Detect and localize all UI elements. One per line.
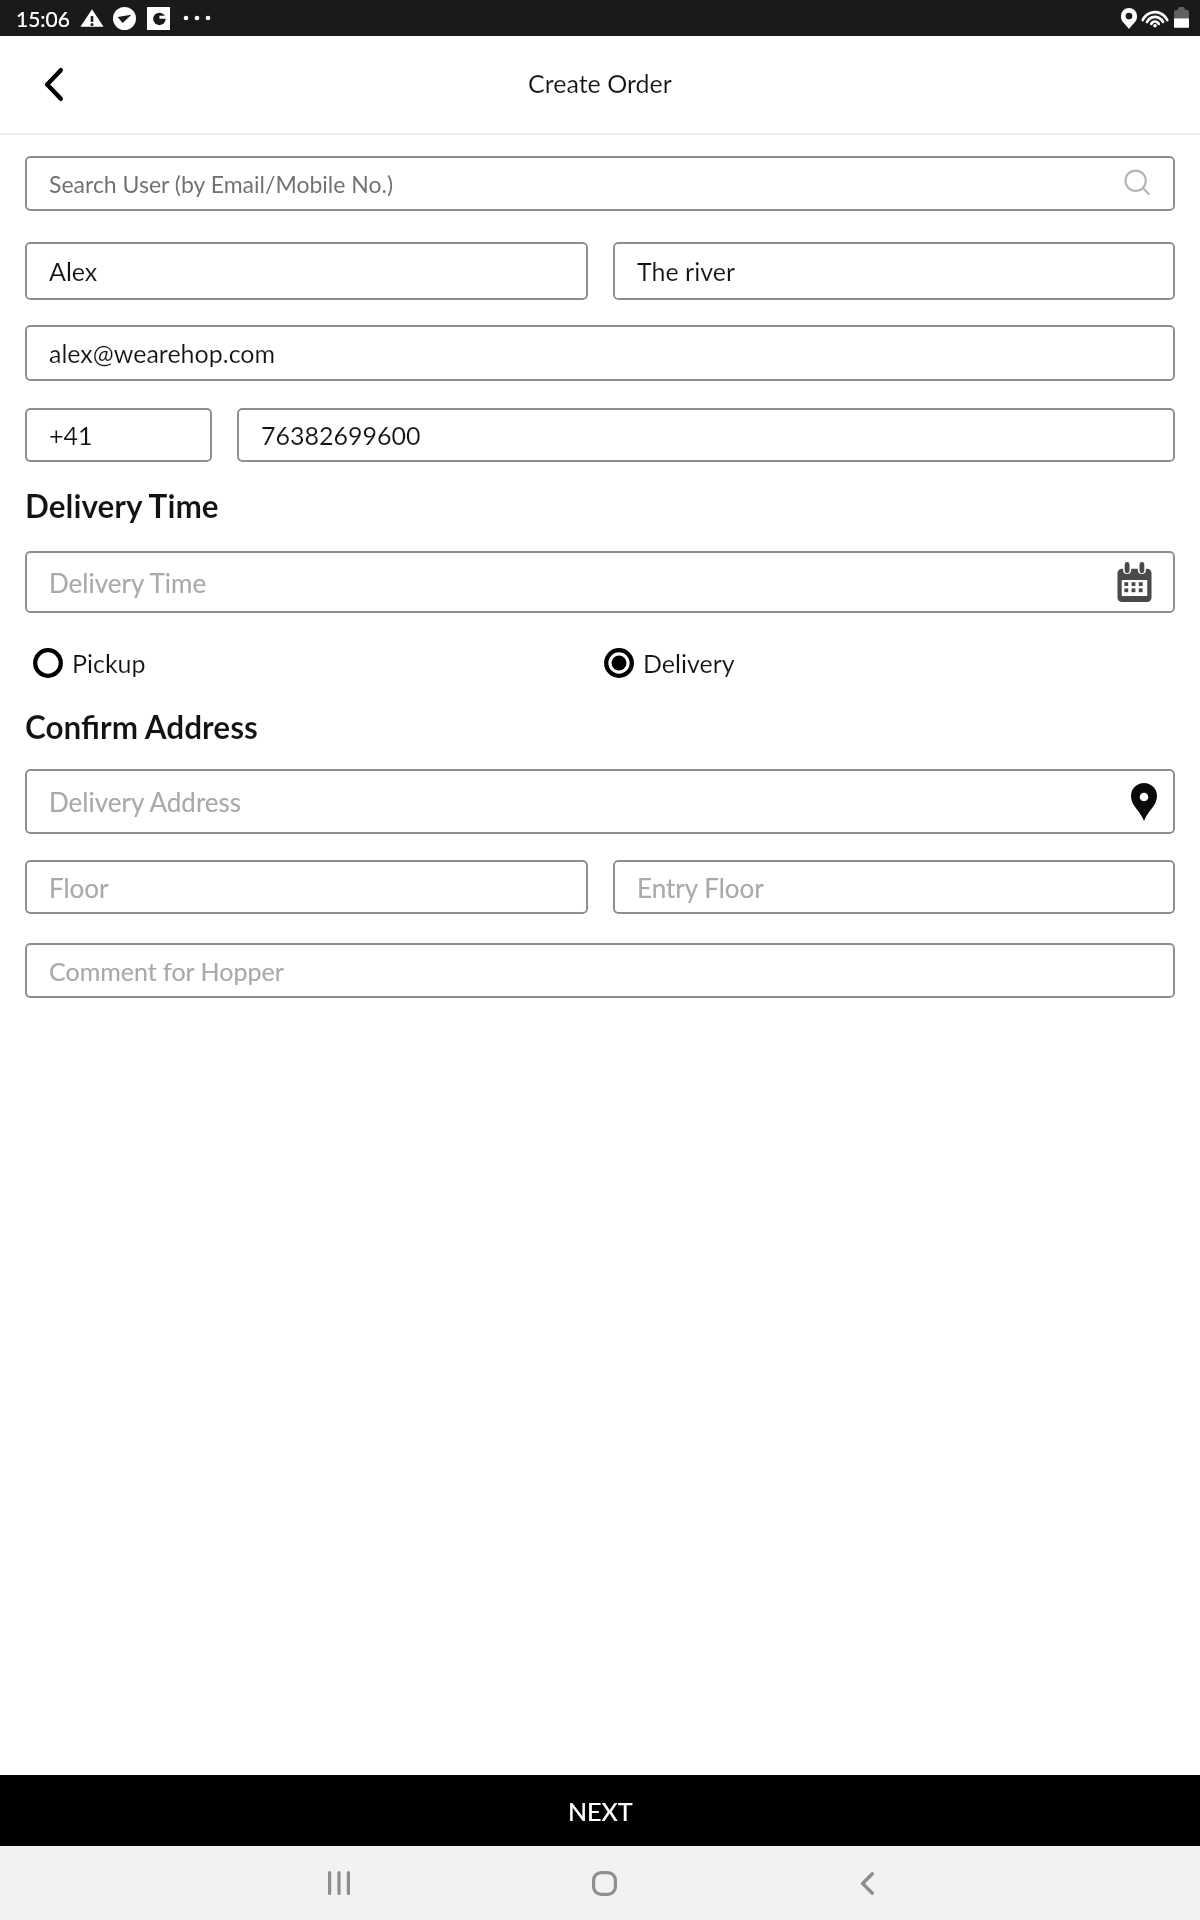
button[interactable]: Search User (by Email/Mobile No.) [25, 156, 1175, 211]
button[interactable]: Back [0, 36, 108, 133]
staticText: Pickup [72, 648, 146, 678]
button[interactable]: Recent apps [292, 1855, 386, 1911]
staticText: Search User (by Email/Mobile No.) [49, 170, 394, 198]
staticText: 76382699600 [261, 420, 421, 450]
staticText: +41 [49, 420, 93, 450]
button[interactable]: Comment for Hopper [25, 943, 1175, 998]
staticText: Alex [49, 256, 98, 286]
staticText: Confirm Address [25, 708, 258, 746]
staticText: Delivery Address [49, 786, 242, 817]
staticText: The river [637, 256, 736, 286]
button[interactable]: +41 [25, 408, 212, 462]
staticText: NEXT [568, 1796, 633, 1826]
staticText: Comment for Hopper [49, 956, 284, 986]
button[interactable]: 76382699600 [237, 408, 1175, 462]
button[interactable]: Delivery [604, 641, 904, 685]
button[interactable]: alex@wearehop.com [25, 325, 1175, 381]
button[interactable]: Floor [25, 860, 588, 914]
button[interactable]: NEXT [0, 1775, 1200, 1846]
button[interactable]: Pickup [33, 641, 333, 685]
staticText: alex@wearehop.com [49, 338, 276, 368]
staticText: Delivery Time [49, 567, 207, 598]
staticText: Entry Floor [637, 872, 764, 903]
button[interactable]: Delivery Time [25, 551, 1175, 613]
staticText: 15:06 [16, 6, 70, 31]
button[interactable]: Delivery Address [25, 769, 1175, 834]
button[interactable]: Back [820, 1855, 914, 1911]
staticText: Delivery Time [25, 487, 219, 525]
staticText: Delivery [643, 648, 735, 678]
staticText: Floor [49, 872, 109, 903]
button[interactable]: Home [557, 1855, 651, 1911]
staticText: Create Order [528, 68, 672, 98]
button[interactable]: Alex [25, 242, 588, 300]
button[interactable]: Entry Floor [613, 860, 1175, 914]
button[interactable]: The river [613, 242, 1175, 300]
